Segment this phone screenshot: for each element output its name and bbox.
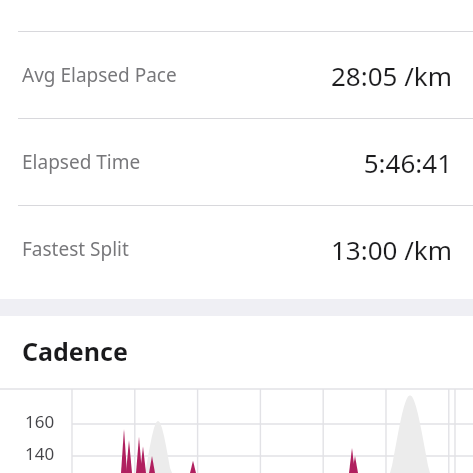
staticText: 140 [25, 442, 55, 465]
button[interactable]: Fastest Split [0, 206, 473, 292]
staticText: 5:46:41 [363, 145, 452, 180]
staticText: 160 [25, 410, 55, 433]
staticText: 28:05 /km [330, 58, 452, 93]
staticText: Avg Elapsed Pace [22, 62, 177, 88]
staticText: 13:00 /km [330, 232, 452, 267]
button[interactable]: Avg Elapsed Pace [0, 32, 473, 118]
staticText: Cadence [22, 334, 128, 368]
staticText: Fastest Split [22, 236, 129, 262]
button[interactable]: Elapsed Time [0, 119, 473, 205]
staticText: Elapsed Time [22, 149, 141, 175]
